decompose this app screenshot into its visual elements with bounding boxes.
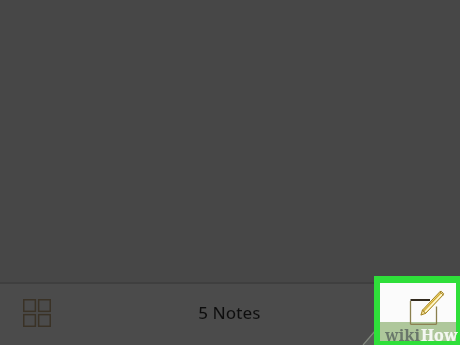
staticText: How	[421, 324, 458, 345]
staticText: wiki	[385, 324, 421, 345]
button[interactable]: Compose new note	[374, 276, 460, 345]
button[interactable]: Grid view	[9, 285, 65, 341]
button[interactable]: 5 Notes	[198, 301, 261, 324]
